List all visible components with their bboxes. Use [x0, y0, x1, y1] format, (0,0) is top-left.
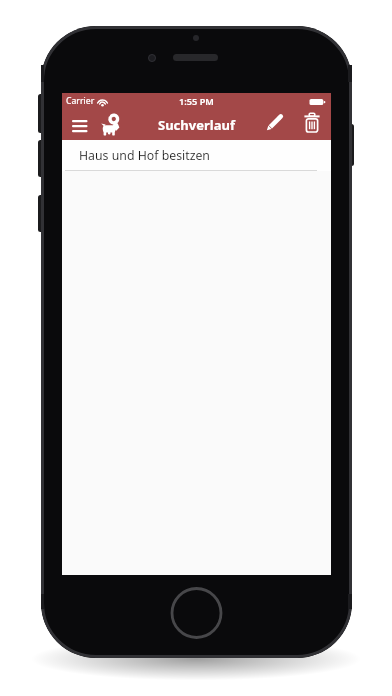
button[interactable]	[303, 112, 323, 134]
staticText: Carrier	[66, 95, 95, 107]
staticText: Suchverlauf	[158, 116, 235, 134]
button[interactable]	[68, 117, 91, 137]
staticText: 1:55 PM	[179, 95, 214, 108]
staticText: Haus und Hof besitzen	[79, 147, 210, 164]
button[interactable]	[264, 113, 286, 134]
button[interactable]: Haus und Hof besitzen	[62, 140, 331, 171]
button[interactable]	[169, 586, 224, 641]
